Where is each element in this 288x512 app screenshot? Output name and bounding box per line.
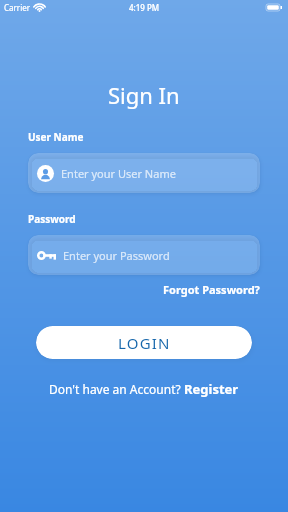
staticText: Register (184, 380, 239, 398)
staticText: User Name (28, 130, 84, 144)
button[interactable]: LOGIN (36, 326, 252, 359)
staticText: Enter your User Name (61, 166, 176, 181)
staticText: LOGIN (118, 333, 171, 353)
staticText: Don't have an Account? (49, 381, 184, 397)
staticText: Enter your Password (63, 248, 170, 263)
button[interactable]: Enter your User Name (28, 153, 260, 193)
button[interactable]: Enter your Password (28, 235, 260, 275)
staticText: 4:19 PM (129, 2, 160, 13)
button[interactable]: Forgot Password? (163, 282, 260, 297)
button[interactable]: Don't have an Account? (49, 380, 239, 398)
staticText: Sign In (108, 80, 180, 110)
staticText: Carrier (4, 2, 31, 13)
staticText: Password (28, 212, 76, 226)
